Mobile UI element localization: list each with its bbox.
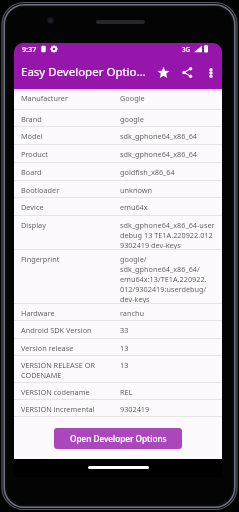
staticText: Model (21, 131, 114, 141)
staticText: 33 (120, 325, 217, 335)
staticText: Easy Developer Optio… (21, 64, 151, 80)
button[interactable]: Hardware (14, 304, 222, 321)
button[interactable]: VERSION incremental (14, 400, 222, 417)
staticText: 13 (120, 343, 217, 353)
button[interactable]: Model (14, 127, 222, 145)
staticText: Bootloader (21, 185, 114, 195)
staticText: Open Developer Options (70, 433, 167, 444)
button[interactable]: Device (14, 198, 222, 216)
button[interactable]: Android SDK Version (14, 321, 222, 339)
staticText: goldfish_x86_64 (120, 167, 217, 177)
staticText: sdk_gphone64_x86_64 (120, 131, 217, 141)
staticText: VERSION codename (21, 387, 114, 397)
button[interactable]: Manufacturer (14, 89, 222, 110)
staticText: 9:37 (22, 44, 37, 54)
staticText: unknown (120, 185, 217, 195)
staticText: Brand (21, 114, 114, 124)
staticText: 13 (120, 360, 217, 370)
button[interactable]: VERSION RELEASE OR CODENAME (14, 356, 222, 383)
staticText: ranchu (120, 308, 217, 318)
staticText: VERSION incremental (21, 404, 114, 414)
staticText: Google (120, 93, 217, 103)
staticText: Version release (21, 343, 114, 353)
staticText: Device (21, 202, 114, 212)
staticText: google/ sdk_gphone64_x86_64/ emu64x:13/T… (120, 254, 217, 303)
button[interactable]: Brand (14, 110, 222, 127)
button[interactable]: Bootloader (14, 181, 222, 198)
button[interactable]: Display (14, 216, 222, 250)
staticText: sdk_gphone64_x86_64-user debug 13 TE1A.2… (120, 220, 217, 249)
button[interactable]: Product (14, 145, 222, 163)
button[interactable]: Favorite (151, 60, 175, 84)
staticText: 9302419 (120, 404, 217, 414)
button[interactable]: VERSION codename (14, 383, 222, 400)
button[interactable]: Board (14, 163, 222, 181)
button[interactable]: More options (199, 61, 222, 84)
button[interactable]: Open Developer Options (54, 428, 182, 449)
button[interactable]: Version release (14, 339, 222, 356)
staticText: google (120, 114, 217, 124)
staticText: Android SDK Version (21, 325, 114, 335)
button[interactable]: Fingerprint (14, 250, 222, 304)
staticText: sdk_gphone64_x86_64 (120, 149, 217, 159)
staticText: 3G (182, 45, 191, 53)
staticText: emu64x (120, 202, 217, 212)
staticText: Display (21, 220, 114, 230)
staticText: REL (120, 387, 217, 397)
staticText: Product (21, 149, 114, 159)
staticText: Board (21, 167, 114, 177)
button[interactable]: Share (175, 60, 199, 84)
staticText: VERSION RELEASE OR CODENAME (21, 360, 114, 380)
staticText: Hardware (21, 308, 114, 318)
staticText: Manufacturer (21, 93, 114, 103)
staticText: Fingerprint (21, 254, 114, 264)
